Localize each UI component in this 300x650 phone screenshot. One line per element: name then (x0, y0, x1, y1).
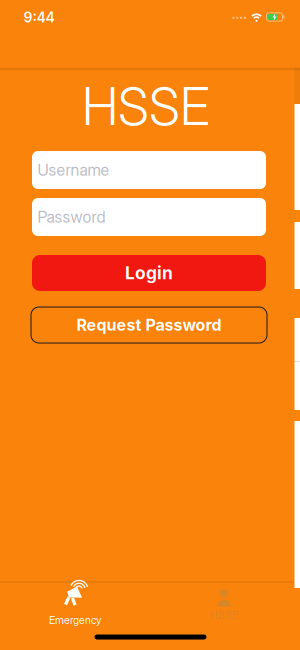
button[interactable]: Emergency (5, 582, 145, 628)
staticText: HSSE (210, 608, 238, 621)
staticText: Username (37, 160, 109, 180)
staticText: Login (125, 262, 173, 283)
staticText: HSSE (82, 74, 210, 137)
staticText: Emergency (49, 613, 101, 626)
button[interactable]: Password (32, 198, 266, 236)
button[interactable]: Request Password (31, 307, 267, 343)
staticText: 9:44 (23, 9, 54, 26)
staticText: Request Password (76, 315, 221, 335)
button[interactable]: Login (32, 255, 266, 291)
button[interactable]: HSSE (154, 582, 294, 628)
staticText: Password (37, 207, 105, 227)
button[interactable]: Username (32, 151, 266, 189)
